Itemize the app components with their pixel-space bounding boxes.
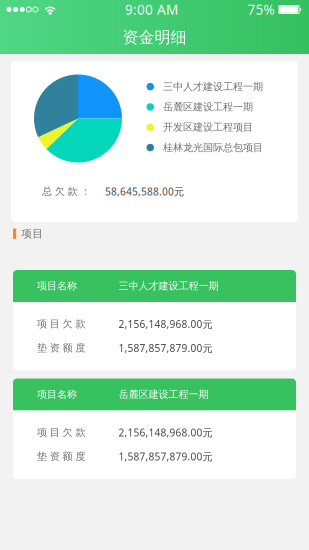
staticText: 项目欠款 [37, 426, 85, 439]
staticText: 1,587,857,879.00元 [118, 450, 212, 463]
button[interactable]: 项目名称 [13, 378, 296, 479]
staticText: 开发区建设工程项目 [163, 121, 253, 134]
staticText: 75% [247, 0, 274, 19]
staticText: 桂林龙光国际总包项目 [163, 141, 263, 154]
staticText: 垫资额度 [37, 450, 85, 463]
staticText: 三中人才建设工程一期 [118, 280, 218, 292]
staticText: 项目名称 [37, 280, 77, 292]
staticText: 三中人才建设工程一期 [163, 80, 263, 93]
staticText: 2,156,148,968.00元 [118, 317, 212, 331]
button[interactable]: 项目名称 [13, 270, 296, 370]
staticText: 2,156,148,968.00元 [118, 426, 212, 439]
staticText: 资金明细 [122, 27, 186, 48]
staticText: 9:00 AM [125, 0, 178, 19]
staticText: 岳麓区建设工程一期 [163, 101, 253, 113]
staticText: 垫资额度 [37, 342, 85, 354]
staticText: 项目欠款 [37, 318, 85, 330]
staticText: 总欠款： [42, 185, 90, 198]
staticText: 岳麓区建设工程一期 [118, 388, 208, 401]
staticText: 1,587,857,879.00元 [118, 341, 212, 355]
staticText: 项目名称 [37, 388, 77, 401]
staticText: 项目 [21, 227, 43, 240]
staticText: 58,645,588.00元 [105, 185, 184, 198]
